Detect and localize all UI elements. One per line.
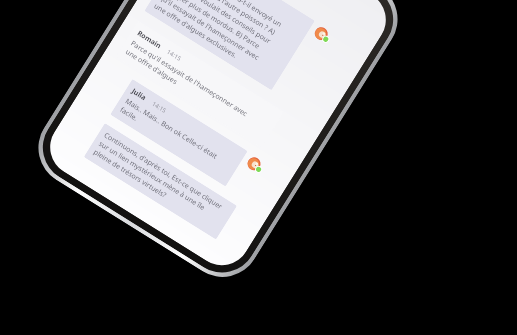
staticText: Parce qu'il voulait des conseils pour xyxy=(168,0,272,46)
staticText: une offre d'algues exclusives. xyxy=(152,1,239,61)
button[interactable]: Continuons, d'après toi, Est-ce que cliq… xyxy=(84,123,237,240)
button[interactable]: Romain xyxy=(116,21,284,148)
staticText: 14:15 xyxy=(150,100,168,115)
button[interactable]: Contact avatar xyxy=(243,154,266,177)
staticText: Mais.. Mais.. Bon ok Celle-ci était xyxy=(123,96,219,162)
staticText: Romain xyxy=(135,28,163,51)
staticText: Parce qu'il essayait de l'hameçonner ave… xyxy=(129,39,249,119)
staticText: 14:15 xyxy=(165,48,183,63)
button[interactable]: Julia xyxy=(144,0,315,90)
staticText: une offre d'algues xyxy=(123,47,180,87)
button[interactable]: Contact avatar xyxy=(310,23,334,47)
staticText: sur un lien mystérieux mène à une île xyxy=(97,139,207,213)
staticText: qu'il essayait de l'hameçonner avec xyxy=(157,0,261,63)
staticText: e-mail suspect à l'autre poisson ? A) xyxy=(173,0,278,38)
staticText: Julia xyxy=(129,86,148,103)
button[interactable]: Julia xyxy=(110,79,248,187)
staticText: Pourquoi le poisson a-t-il envoyé un xyxy=(178,0,284,30)
staticText: pleine de trésors virtuels? xyxy=(91,147,169,201)
staticText: facile. xyxy=(118,105,140,124)
staticText: Continuons, d'après toi, Est-ce que cliq… xyxy=(102,130,224,212)
staticText: attraper plus de mordus. B) Parce xyxy=(163,0,262,52)
